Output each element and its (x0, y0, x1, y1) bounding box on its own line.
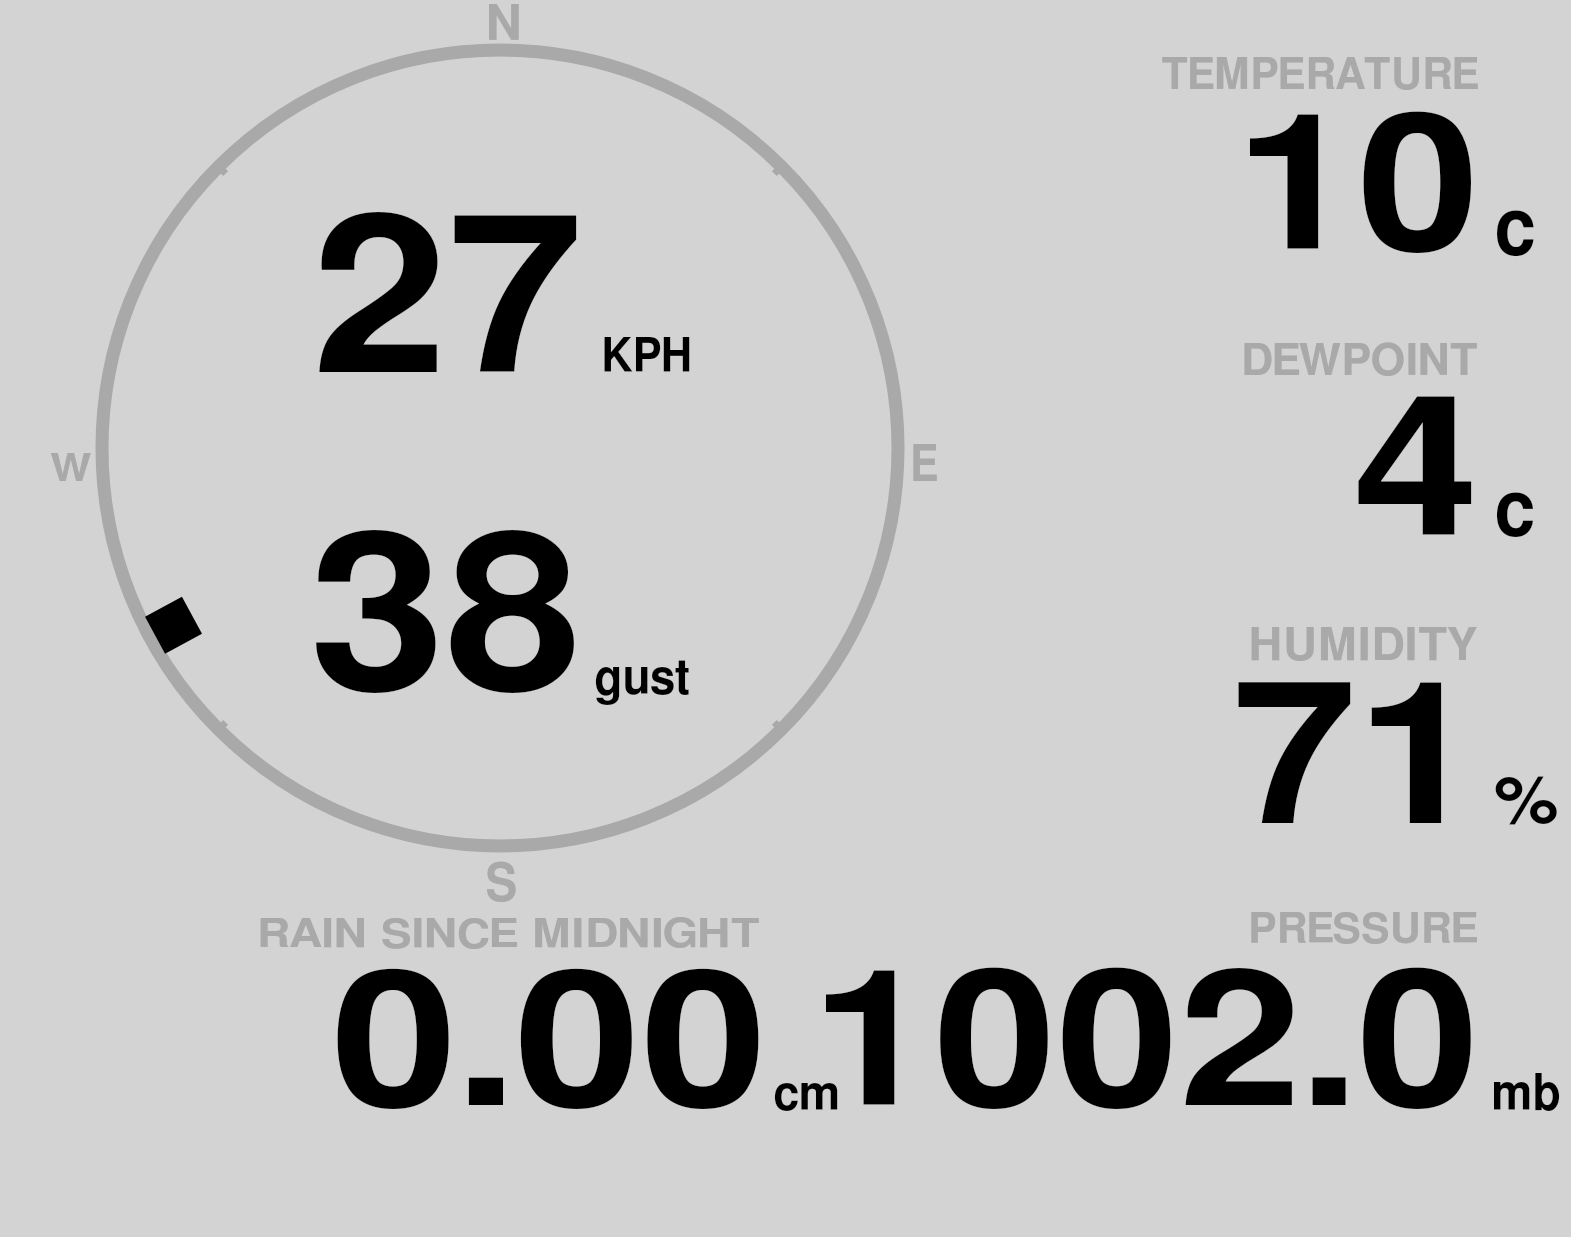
button[interactable]: Dewpoint 4 degrees Celsius (1010, 310, 1565, 590)
staticText: KPH (601, 334, 693, 381)
staticText: HUMIDITY (1248, 623, 1478, 669)
staticText: 1002.0 (811, 954, 1480, 1143)
other: Wind direction compass dial (0, 0, 1571, 1237)
staticText: S (485, 859, 518, 911)
staticText: cm (773, 1071, 841, 1119)
button[interactable]: Rain since midnight 0.00 cm (180, 890, 860, 1140)
staticText: TEMPERATURE (1161, 55, 1480, 98)
staticText: RAIN SINCE MIDNIGHT (257, 916, 761, 955)
staticText: PRESSURE (1248, 910, 1478, 951)
staticText: 10 (1235, 98, 1480, 287)
staticText: 0.00 (331, 955, 768, 1143)
staticText: 71 (1232, 665, 1481, 863)
staticText: 27 (312, 195, 583, 416)
button[interactable]: Humidity 71 percent (1010, 590, 1565, 880)
staticText: c (1494, 191, 1537, 270)
staticText: 4 (1353, 380, 1479, 574)
staticText: W (50, 451, 92, 489)
button[interactable]: Temperature 10 degrees Celsius (1010, 20, 1565, 310)
staticText: E (910, 441, 939, 491)
staticText: mb (1491, 1069, 1561, 1120)
button[interactable]: Pressure 1002.0 mb (870, 890, 1565, 1140)
staticText: % (1494, 771, 1559, 836)
button[interactable]: Wind: 27 KPH, gusting 38, from the west … (0, 0, 1000, 900)
staticText: DEWPOINT (1241, 340, 1478, 384)
staticText: 38 (309, 513, 582, 732)
staticText: c (1494, 473, 1536, 551)
staticText: N (485, 1, 523, 50)
staticText: gust (594, 656, 691, 704)
